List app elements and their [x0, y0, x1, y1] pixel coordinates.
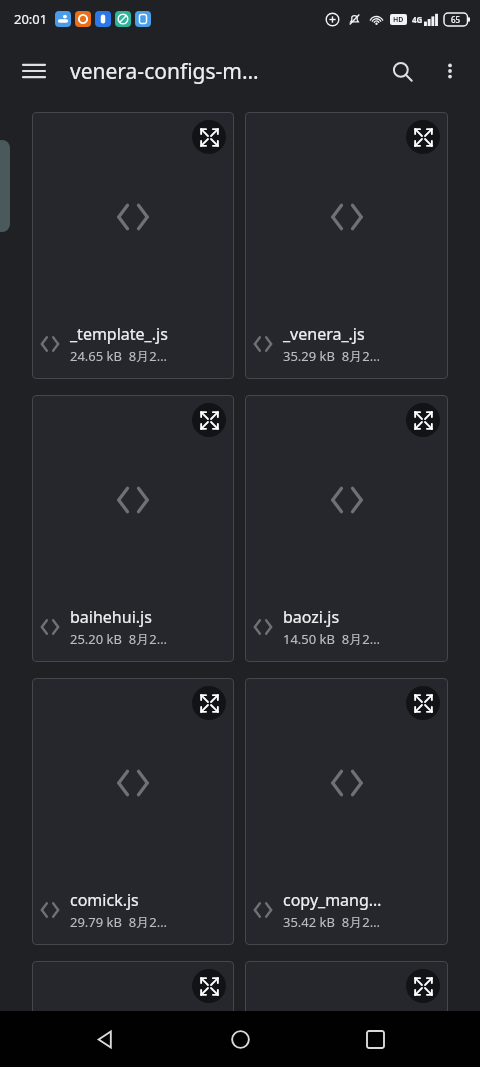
button[interactable]: Expand preview — [245, 112, 448, 379]
button[interactable]: Expand preview — [32, 678, 234, 945]
button[interactable]: Expand preview — [245, 395, 448, 662]
button[interactable]: Expand preview — [32, 112, 234, 379]
button[interactable]: Expand preview — [192, 403, 226, 437]
button[interactable]: Recent apps — [345, 1011, 405, 1067]
button[interactable]: Expand preview — [406, 120, 440, 154]
staticText: comick.js — [70, 889, 139, 911]
staticText: 35.42 kB 8月2… — [283, 913, 380, 931]
staticText: _venera_.js — [283, 323, 365, 345]
button[interactable]: Expand preview — [192, 969, 226, 1003]
staticText: baozi.js — [283, 606, 340, 628]
button[interactable]: Expand preview — [406, 969, 440, 1003]
button[interactable]: Expand preview — [245, 678, 448, 945]
staticText: 14.50 kB 8月2… — [283, 630, 380, 648]
button[interactable]: Expand preview — [245, 961, 448, 1051]
button[interactable]: Expand preview — [192, 120, 226, 154]
button[interactable]: Open navigation drawer — [10, 47, 58, 95]
button[interactable]: More options — [426, 47, 474, 95]
button[interactable]: Expand preview — [192, 686, 226, 720]
staticText: HD — [393, 15, 404, 25]
staticText: venera-configs-m… — [70, 57, 378, 86]
staticText: 24.65 kB 8月2… — [70, 347, 167, 365]
button[interactable]: Expand preview — [406, 403, 440, 437]
staticText: baihehui.js — [70, 606, 152, 628]
staticText: 4G — [412, 14, 423, 25]
staticText: 65 — [451, 14, 461, 25]
button[interactable]: Search — [378, 47, 426, 95]
button[interactable]: Home — [210, 1011, 270, 1067]
button[interactable]: Expand preview — [406, 686, 440, 720]
staticText: 20:01 — [14, 10, 48, 28]
button[interactable]: Expand preview — [32, 961, 234, 1051]
staticText: 25.20 kB 8月2… — [70, 630, 167, 648]
staticText: copy_mang… — [283, 889, 382, 911]
staticText: 35.29 kB 8月2… — [283, 347, 380, 365]
button[interactable]: Back — [75, 1011, 135, 1067]
button[interactable]: Expand preview — [32, 395, 234, 662]
staticText: 29.79 kB 8月2… — [70, 913, 167, 931]
staticText: _template_.js — [70, 323, 168, 345]
